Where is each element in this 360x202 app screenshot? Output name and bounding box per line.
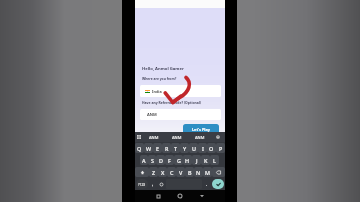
button[interactable]: P — [216, 143, 225, 153]
button[interactable]: Z — [149, 167, 158, 177]
button[interactable]: Home — [175, 191, 185, 201]
button[interactable]: L — [210, 155, 219, 165]
staticText: C — [170, 169, 174, 176]
staticText: , — [152, 181, 154, 188]
button[interactable]: M — [203, 167, 212, 177]
button[interactable]: Let's Play — [183, 124, 219, 134]
staticText: Z — [152, 169, 156, 176]
staticText: S — [151, 157, 154, 164]
button[interactable]: Keyboard toolbar — [135, 132, 143, 142]
staticText: ANM — [147, 112, 157, 117]
button[interactable]: X — [158, 167, 167, 177]
button[interactable]: . — [203, 179, 211, 189]
button[interactable]: V — [176, 167, 185, 177]
button[interactable]: B — [185, 167, 194, 177]
button[interactable]: Enter — [212, 179, 224, 189]
button[interactable]: India — [140, 85, 221, 97]
button[interactable]: D — [156, 155, 165, 165]
staticText: K — [204, 157, 208, 164]
button[interactable]: ?123 — [136, 179, 148, 189]
staticText: Y — [183, 145, 187, 152]
button[interactable]: Shift — [135, 167, 149, 177]
staticText: F — [168, 157, 171, 164]
staticText: O — [209, 145, 214, 152]
button[interactable]: W — [144, 143, 153, 153]
button[interactable]: Recents — [153, 191, 163, 201]
staticText: ANM — [195, 135, 205, 140]
staticText: H — [185, 157, 190, 164]
staticText: U — [192, 145, 196, 152]
staticText: T — [174, 145, 178, 152]
button[interactable]: ANM — [165, 132, 188, 142]
button[interactable]: U — [189, 143, 198, 153]
staticText: Hello, Anmol Gamer — [142, 66, 184, 72]
staticText: . — [206, 181, 208, 188]
staticText: ANM — [149, 135, 159, 140]
staticText: V — [179, 169, 183, 176]
staticText: N — [196, 169, 201, 176]
button[interactable]: Emoji — [157, 179, 165, 189]
staticText: A — [142, 157, 146, 164]
button[interactable]: O — [207, 143, 216, 153]
staticText: J — [196, 157, 198, 164]
button[interactable]: I — [198, 143, 207, 153]
staticText: ?123 — [138, 182, 146, 187]
staticText: D — [159, 157, 163, 164]
button[interactable]: , — [149, 179, 157, 189]
button[interactable]: J — [192, 155, 201, 165]
button[interactable]: Q — [135, 143, 144, 153]
staticText: M — [205, 169, 210, 176]
button[interactable]: Y — [180, 143, 189, 153]
button[interactable]: N — [194, 167, 203, 177]
staticText: ANM — [172, 135, 182, 140]
staticText: R — [165, 145, 169, 152]
staticText: Where are you from? — [142, 76, 177, 80]
staticText: G — [177, 157, 181, 164]
button[interactable]: ANM — [188, 132, 211, 142]
staticText: India — [152, 89, 162, 94]
button[interactable]: S — [148, 155, 156, 165]
button[interactable]: T — [171, 143, 180, 153]
staticText: L — [213, 157, 216, 164]
button[interactable]: Back — [197, 191, 207, 201]
button[interactable]: ANM — [140, 109, 221, 120]
button[interactable]: Voice input — [211, 132, 225, 142]
button[interactable]: E — [153, 143, 162, 153]
staticText: Let's Play — [192, 127, 210, 132]
staticText: E — [156, 145, 160, 152]
staticText: B — [188, 169, 192, 176]
staticText: P — [219, 145, 223, 152]
staticText: Q — [137, 145, 142, 152]
button[interactable]: C — [167, 167, 176, 177]
button[interactable]: ANM — [143, 132, 165, 142]
button[interactable]: G — [174, 155, 183, 165]
staticText: I — [202, 145, 204, 152]
button[interactable]: K — [201, 155, 210, 165]
staticText: Have any Referral Code? (Optional) — [142, 100, 201, 105]
button[interactable]: A — [140, 155, 148, 165]
staticText: X — [161, 169, 165, 176]
button[interactable]: R — [162, 143, 171, 153]
button[interactable]: F — [165, 155, 174, 165]
button[interactable]: Backspace — [212, 167, 225, 177]
button[interactable]: H — [183, 155, 192, 165]
staticText: W — [146, 145, 152, 152]
